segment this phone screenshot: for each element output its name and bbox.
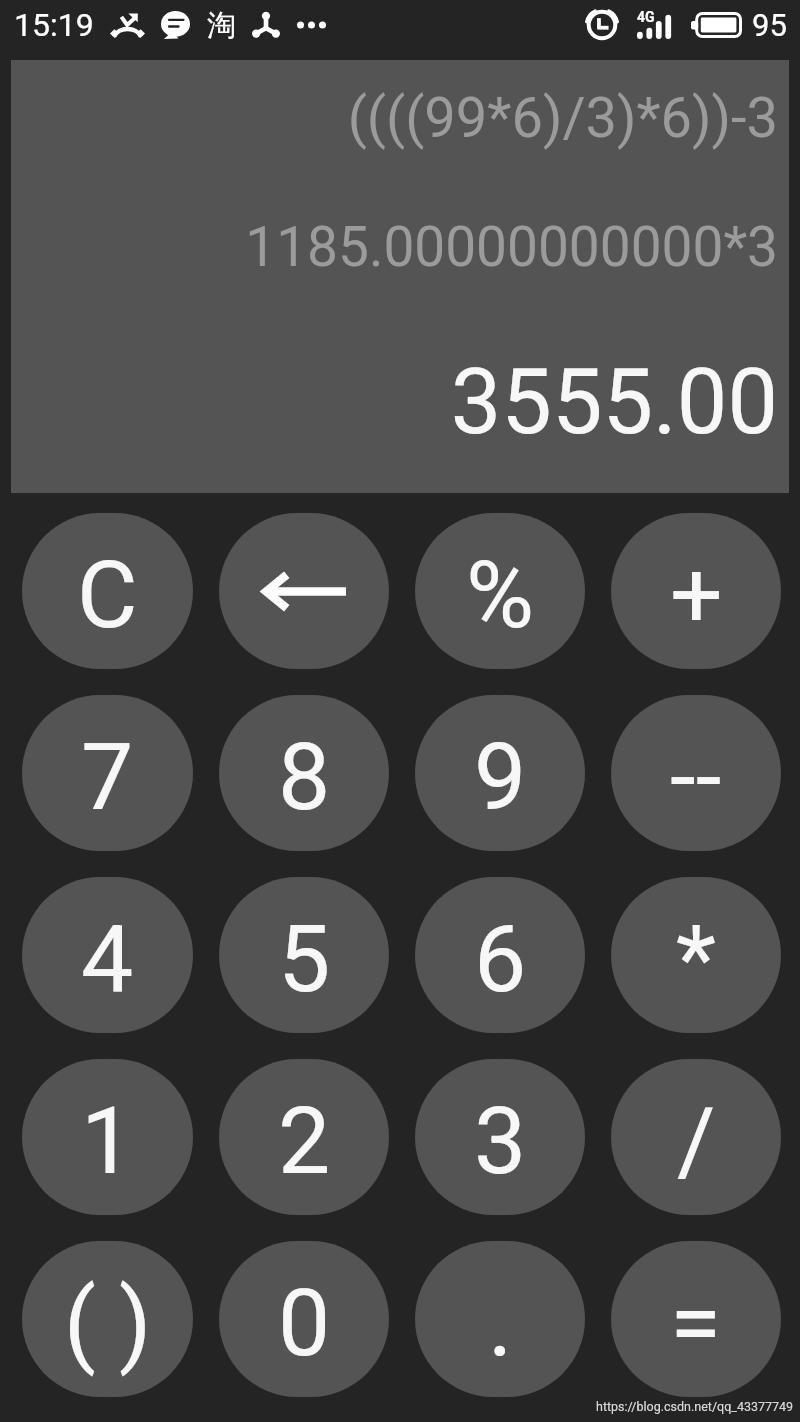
staticText: 9 — [474, 723, 527, 832]
staticText: 0 — [278, 1269, 331, 1378]
staticText: 7 — [81, 723, 134, 832]
staticText: 3555.00 — [450, 350, 778, 455]
staticText: 6 — [474, 905, 527, 1014]
staticText: -- — [670, 723, 722, 832]
button[interactable]: 9 — [415, 695, 585, 851]
button[interactable]: / — [611, 1059, 781, 1215]
staticText: 8 — [278, 723, 331, 832]
staticText: * — [676, 905, 717, 1014]
staticText: C — [77, 541, 138, 650]
staticText: % — [466, 541, 535, 650]
button[interactable]: + — [611, 513, 781, 669]
button[interactable]: 2 — [219, 1059, 389, 1215]
staticText: 4G — [637, 9, 655, 25]
button[interactable]: * — [611, 877, 781, 1033]
staticText: 4 — [81, 905, 134, 1014]
staticText: 淘 — [207, 7, 236, 44]
staticText: 3 — [474, 1087, 527, 1196]
button[interactable]: Clear — [22, 513, 193, 669]
button[interactable]: 4 — [22, 877, 193, 1033]
button[interactable]: -- — [611, 695, 781, 851]
staticText: 5 — [278, 905, 331, 1014]
staticText: ((((99*6)/3)*6))-3 — [347, 85, 778, 151]
staticText: 95 — [752, 7, 787, 43]
staticText: https://blog.csdn.net/qq_43377749 — [596, 1399, 794, 1414]
staticText: / — [677, 1087, 716, 1196]
button[interactable]: % — [415, 513, 585, 669]
button[interactable]: Backspace — [219, 513, 389, 669]
button[interactable]: 7 — [22, 695, 193, 851]
staticText: 2 — [278, 1087, 331, 1196]
button[interactable]: 5 — [219, 877, 389, 1033]
button[interactable]: 0 — [219, 1241, 389, 1397]
button[interactable]: ( ) — [22, 1241, 193, 1397]
button[interactable]: 8 — [219, 695, 389, 851]
staticText: 15:19 — [14, 6, 94, 44]
staticText: 1 — [81, 1087, 134, 1196]
staticText: = — [670, 1269, 722, 1378]
button[interactable]: 6 — [415, 877, 585, 1033]
button[interactable]: 3 — [415, 1059, 585, 1215]
staticText: . — [488, 1269, 513, 1378]
button[interactable]: = — [611, 1241, 781, 1397]
staticText: 1185.00000000000*3 — [245, 215, 778, 279]
button[interactable]: . — [415, 1241, 585, 1397]
staticText: ( ) — [64, 1269, 152, 1378]
staticText: + — [670, 541, 723, 650]
button[interactable]: 1 — [22, 1059, 193, 1215]
